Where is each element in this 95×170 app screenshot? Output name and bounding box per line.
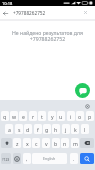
button[interactable]: Keyboard settings	[83, 102, 92, 111]
button[interactable]: t	[38, 111, 46, 121]
button[interactable]: m	[71, 138, 79, 148]
button[interactable]: n	[61, 138, 69, 148]
button[interactable]: j	[62, 124, 70, 134]
staticText: 10:18	[2, 1, 13, 6]
button[interactable]: Search	[80, 153, 94, 164]
staticText: w	[12, 113, 17, 120]
button[interactable]: .	[70, 153, 78, 164]
button[interactable]: i	[67, 111, 75, 121]
button[interactable]: l	[81, 124, 89, 134]
button[interactable]: f	[34, 124, 42, 134]
staticText: ,	[26, 155, 28, 162]
staticText: y	[51, 113, 54, 120]
staticText: j	[65, 126, 67, 133]
button[interactable]: s	[15, 124, 23, 134]
staticText: p	[88, 113, 92, 120]
button[interactable]: u	[57, 111, 65, 121]
staticText: v	[45, 140, 48, 147]
staticText: .	[73, 155, 75, 162]
button[interactable]: Backspace	[80, 138, 94, 148]
staticText: o	[78, 113, 82, 120]
button[interactable]: English	[32, 153, 67, 164]
staticText: +79788262752	[13, 10, 46, 16]
button[interactable]: p	[86, 111, 94, 121]
staticText: e	[22, 113, 25, 120]
staticText: n	[63, 140, 67, 147]
staticText: r	[32, 113, 35, 120]
button[interactable]: z	[13, 138, 21, 148]
staticText: m	[73, 140, 78, 147]
staticText: h	[54, 126, 58, 133]
button[interactable]: o	[76, 111, 84, 121]
button[interactable]: v	[42, 138, 50, 148]
staticText: Не найдено результатов для +79788262752	[0, 29, 95, 43]
button[interactable]: e	[19, 111, 27, 121]
button[interactable]: Emoji	[13, 153, 21, 164]
staticText: l	[84, 126, 86, 133]
button[interactable]: d	[24, 124, 32, 134]
staticText: ?123	[2, 157, 10, 162]
staticText: k	[74, 126, 77, 133]
button[interactable]: b	[52, 138, 60, 148]
button[interactable]: y	[48, 111, 56, 121]
button[interactable]: Back	[0, 8, 11, 19]
staticText: b	[54, 140, 58, 147]
button[interactable]: g	[43, 124, 51, 134]
button[interactable]: q	[1, 111, 9, 121]
staticText: g	[45, 126, 49, 133]
staticText: u	[59, 113, 63, 120]
button[interactable]: Shift	[1, 138, 12, 148]
button[interactable]: Clear	[80, 7, 91, 18]
staticText: i	[70, 113, 72, 120]
staticText: q	[3, 113, 7, 120]
button[interactable]: r	[29, 111, 37, 121]
staticText: f	[37, 126, 39, 133]
staticText: d	[26, 126, 30, 133]
staticText: s	[18, 126, 21, 133]
button[interactable]: Symbols	[1, 153, 11, 164]
staticText: x	[26, 140, 29, 147]
staticText: English	[43, 156, 56, 161]
staticText: a	[8, 126, 11, 133]
button[interactable]: c	[32, 138, 40, 148]
staticText: c	[35, 140, 38, 147]
button[interactable]: x	[23, 138, 31, 148]
button[interactable]: New chat	[75, 83, 90, 98]
button[interactable]: k	[71, 124, 79, 134]
button[interactable]: h	[52, 124, 60, 134]
staticText: t	[41, 113, 43, 120]
button[interactable]: a	[5, 124, 13, 134]
staticText: z	[16, 140, 19, 147]
button[interactable]: ,	[23, 153, 31, 164]
button[interactable]: w	[10, 111, 18, 121]
